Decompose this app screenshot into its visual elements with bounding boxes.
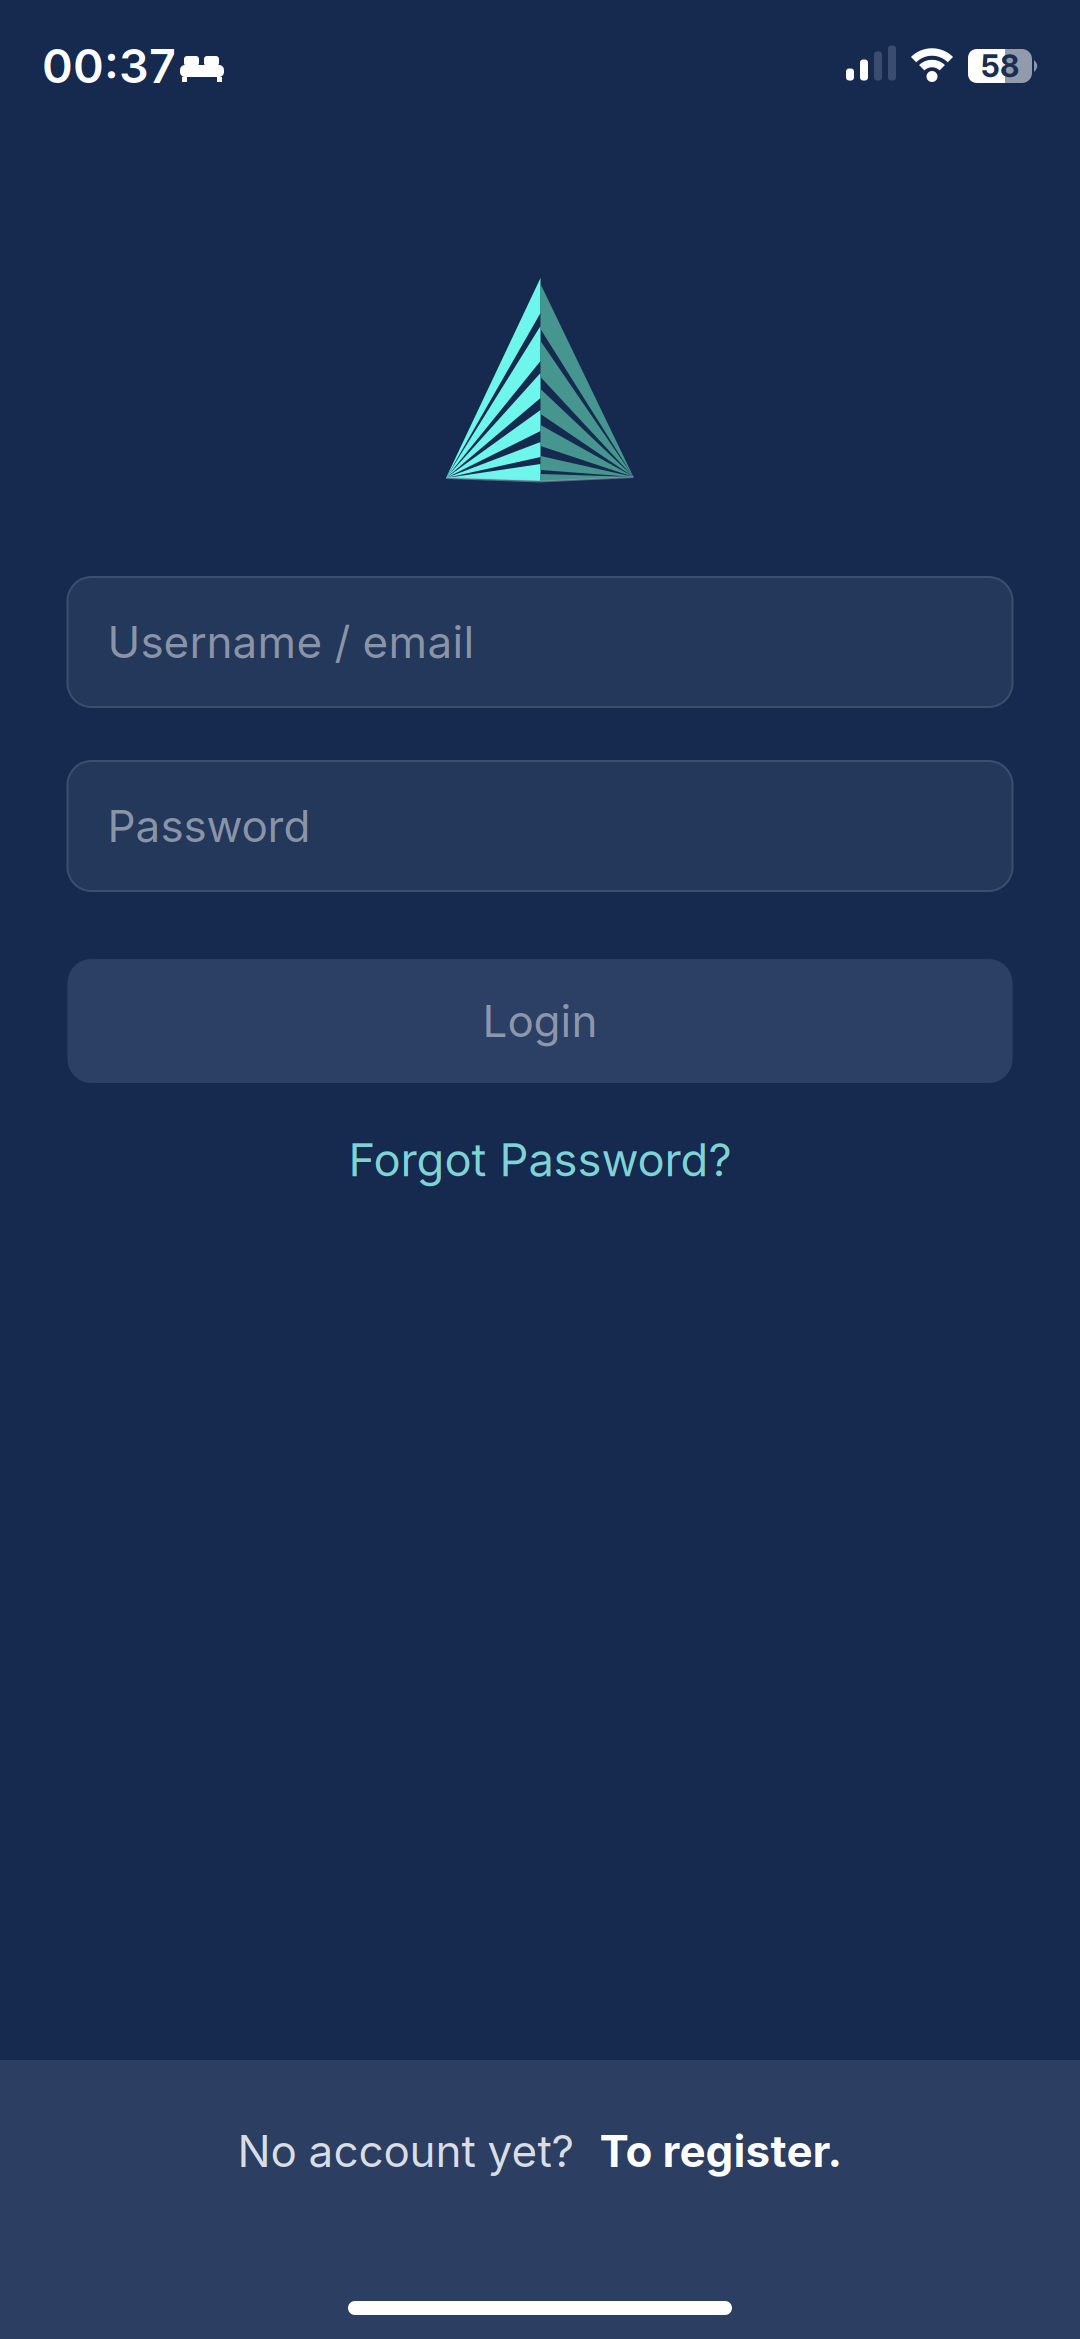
staticText: To register. — [599, 2125, 842, 2177]
staticText: Password — [107, 800, 310, 852]
staticText: Login — [482, 995, 597, 1047]
button[interactable]: Forgot Password? — [348, 1133, 731, 1186]
staticText: Username / email — [107, 616, 474, 668]
button[interactable]: Username / email — [67, 577, 1012, 707]
button[interactable]: Login — [67, 959, 1012, 1083]
button[interactable]: Password — [67, 761, 1012, 891]
button[interactable]: No account yet? — [237, 2125, 842, 2177]
staticText: 58 — [981, 48, 1019, 84]
staticText: No account yet? — [237, 2125, 573, 2177]
staticText: 00:37 — [42, 38, 176, 94]
staticText: Forgot Password? — [348, 1133, 731, 1186]
